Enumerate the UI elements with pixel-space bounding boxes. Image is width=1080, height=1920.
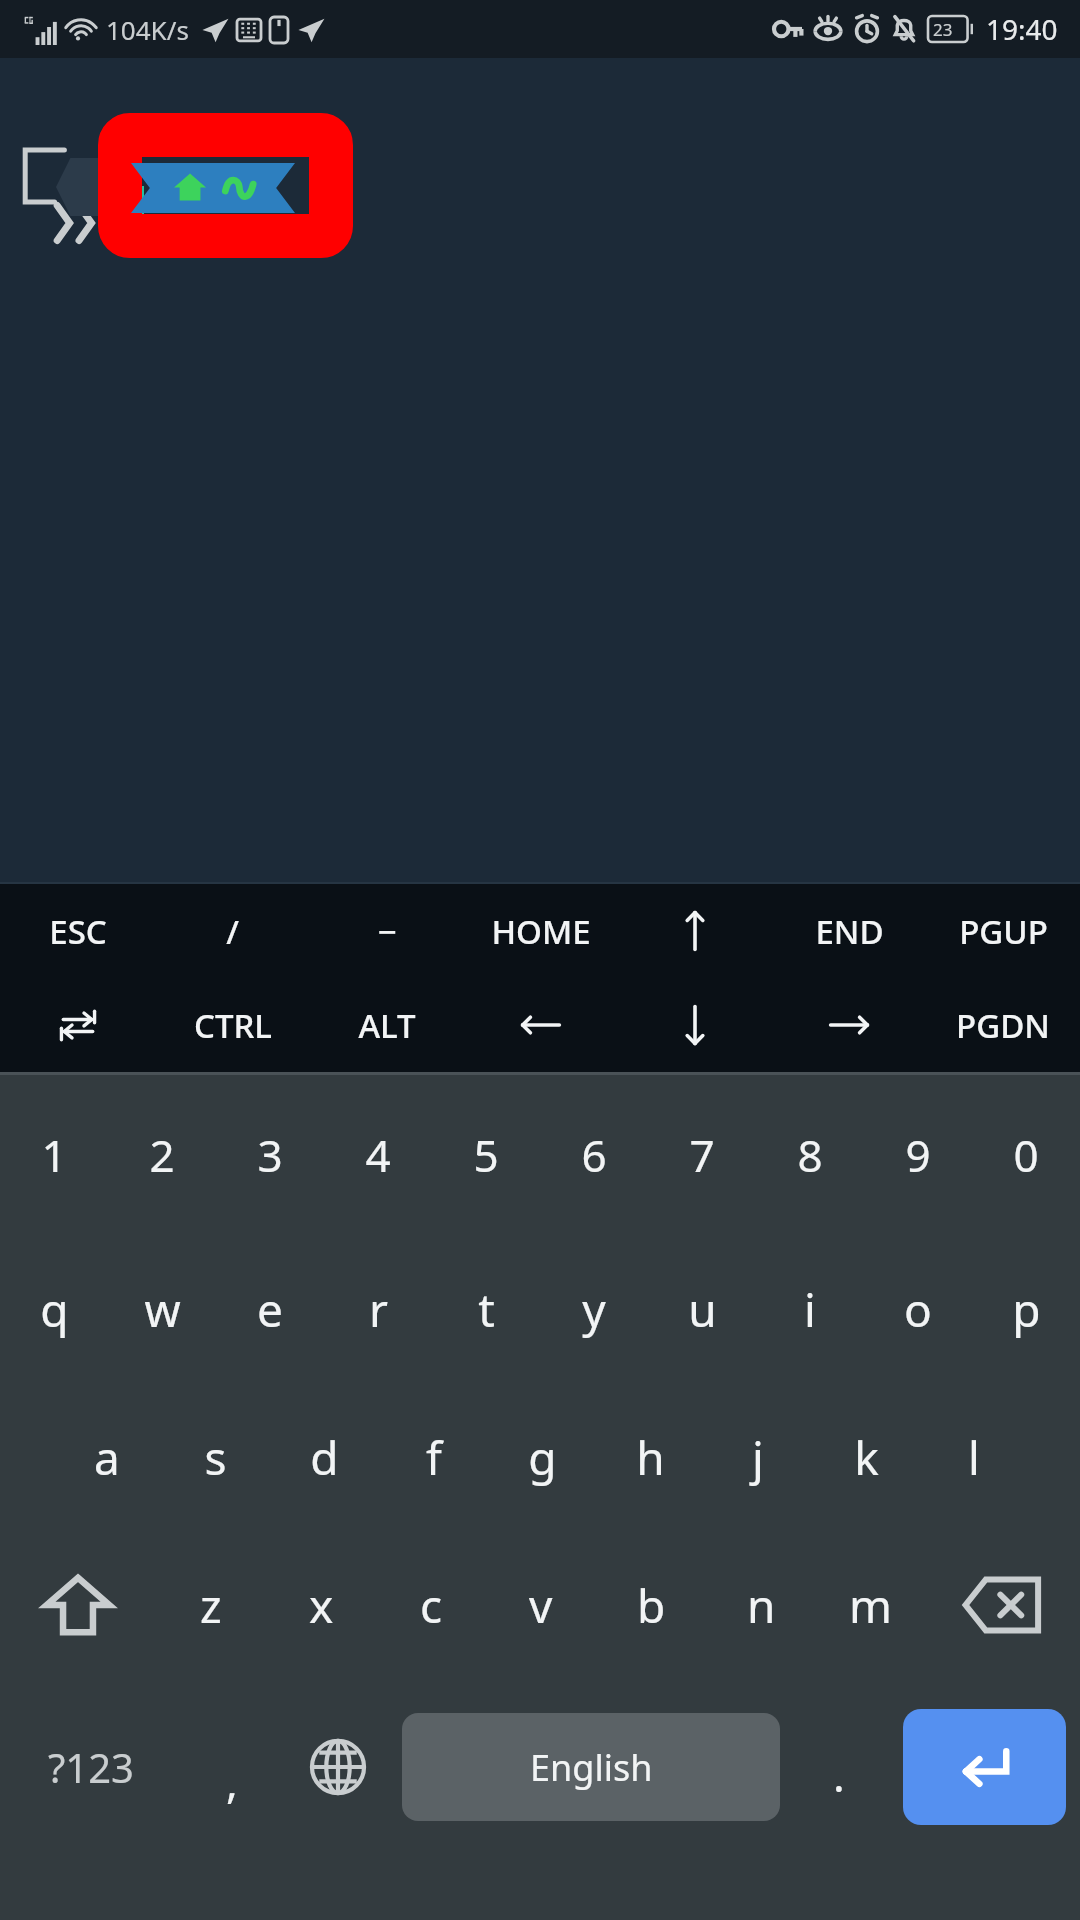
- button[interactable]: e: [216, 1235, 324, 1383]
- button[interactable]: i: [756, 1235, 864, 1383]
- button[interactable]: a: [52, 1383, 161, 1531]
- button[interactable]: PGDN: [926, 978, 1080, 1072]
- button[interactable]: s: [161, 1383, 270, 1531]
- button[interactable]: p: [972, 1235, 1080, 1383]
- staticText: d: [310, 1426, 339, 1489]
- staticText: CTRL: [194, 1003, 272, 1048]
- button[interactable]: c: [376, 1531, 486, 1679]
- button[interactable]: b: [596, 1531, 706, 1679]
- button[interactable]: g: [488, 1383, 596, 1531]
- staticText: p: [1012, 1278, 1041, 1341]
- button[interactable]: z: [155, 1531, 266, 1679]
- button[interactable]: Change language: [282, 1679, 394, 1855]
- button[interactable]: v: [486, 1531, 596, 1679]
- button[interactable]: n: [706, 1531, 816, 1679]
- button[interactable]: −: [310, 884, 464, 978]
- button[interactable]: ,: [181, 1679, 282, 1855]
- button[interactable]: left: [464, 978, 618, 1072]
- staticText: 23: [933, 18, 953, 41]
- button[interactable]: 1: [0, 1075, 108, 1235]
- staticText: .: [833, 1745, 845, 1805]
- button[interactable]: 6: [540, 1075, 648, 1235]
- button[interactable]: /: [155, 884, 310, 978]
- staticText: ALT: [358, 1003, 416, 1048]
- staticText: ESC: [49, 909, 107, 954]
- button[interactable]: Shift: [0, 1531, 155, 1679]
- button[interactable]: o: [864, 1235, 972, 1383]
- button[interactable]: ESC: [0, 884, 155, 978]
- button[interactable]: English: [402, 1713, 780, 1821]
- staticText: f: [426, 1426, 442, 1489]
- button[interactable]: h: [596, 1383, 704, 1531]
- button[interactable]: down: [618, 978, 772, 1072]
- button[interactable]: 2: [108, 1075, 216, 1235]
- staticText: 4: [365, 1125, 391, 1185]
- button[interactable]: y: [540, 1235, 648, 1383]
- button[interactable]: 7: [648, 1075, 756, 1235]
- button[interactable]: k: [812, 1383, 920, 1531]
- staticText: −: [378, 909, 397, 954]
- button[interactable]: l: [920, 1383, 1028, 1531]
- button[interactable]: up: [618, 884, 772, 978]
- button[interactable]: Backspace: [926, 1531, 1080, 1679]
- button[interactable]: Enter: [903, 1709, 1066, 1825]
- staticText: ?123: [48, 1740, 134, 1794]
- button[interactable]: j: [704, 1383, 812, 1531]
- staticText: s: [204, 1426, 227, 1489]
- button[interactable]: Breadcrumb home: [131, 163, 295, 213]
- button[interactable]: u: [648, 1235, 756, 1383]
- button[interactable]: x: [266, 1531, 376, 1679]
- button[interactable]: PGUP: [926, 884, 1080, 978]
- button[interactable]: w: [108, 1235, 216, 1383]
- staticText: l: [968, 1426, 980, 1489]
- button[interactable]: right: [772, 978, 926, 1072]
- button[interactable]: q: [0, 1235, 108, 1383]
- staticText: o: [904, 1278, 932, 1341]
- button[interactable]: r: [324, 1235, 432, 1383]
- button[interactable]: 0: [972, 1075, 1080, 1235]
- staticText: END: [815, 909, 884, 954]
- button[interactable]: .: [788, 1679, 889, 1855]
- staticText: i: [804, 1278, 816, 1341]
- staticText: v: [529, 1574, 553, 1637]
- button[interactable]: 8: [756, 1075, 864, 1235]
- staticText: HOME: [491, 909, 591, 954]
- staticText: 7: [689, 1125, 715, 1185]
- staticText: j: [752, 1426, 764, 1489]
- staticText: 3: [257, 1125, 283, 1185]
- staticText: PGUP: [959, 909, 1048, 954]
- staticText: 19:40: [986, 10, 1058, 48]
- button[interactable]: f: [379, 1383, 488, 1531]
- button[interactable]: t: [432, 1235, 540, 1383]
- staticText: ,: [226, 1751, 238, 1811]
- staticText: c: [420, 1574, 443, 1637]
- button[interactable]: tab: [0, 978, 155, 1072]
- staticText: n: [747, 1574, 776, 1637]
- staticText: z: [200, 1574, 222, 1637]
- staticText: a: [94, 1426, 120, 1489]
- staticText: 1: [41, 1125, 67, 1185]
- staticText: 5: [473, 1125, 499, 1185]
- staticText: g: [528, 1426, 557, 1489]
- staticText: w: [144, 1278, 181, 1341]
- staticText: u: [688, 1278, 717, 1341]
- staticText: 104K/s: [106, 12, 189, 47]
- staticText: e: [257, 1278, 283, 1341]
- staticText: 8: [797, 1125, 823, 1185]
- button[interactable]: 9: [864, 1075, 972, 1235]
- button[interactable]: 5: [432, 1075, 540, 1235]
- button[interactable]: ?123: [0, 1679, 181, 1855]
- staticText: k: [854, 1426, 879, 1489]
- staticText: English: [530, 1743, 653, 1792]
- button[interactable]: CTRL: [155, 978, 310, 1072]
- staticText: h: [636, 1426, 665, 1489]
- button[interactable]: 3: [216, 1075, 324, 1235]
- button[interactable]: d: [270, 1383, 379, 1531]
- button[interactable]: 4: [324, 1075, 432, 1235]
- staticText: q: [40, 1278, 69, 1341]
- button[interactable]: m: [816, 1531, 926, 1679]
- button[interactable]: HOME: [464, 884, 618, 978]
- button[interactable]: ALT: [310, 978, 464, 1072]
- button[interactable]: END: [772, 884, 926, 978]
- staticText: 0: [1013, 1125, 1039, 1185]
